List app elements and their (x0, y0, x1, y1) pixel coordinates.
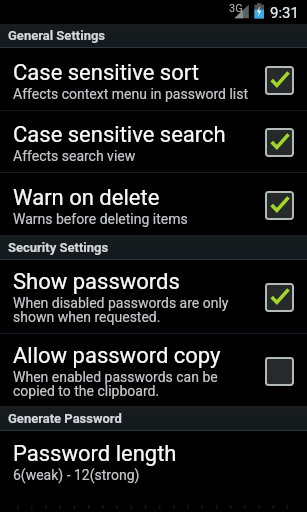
staticText: 9:31 (270, 4, 299, 22)
staticText: Affects search view (13, 150, 136, 164)
button[interactable]: Show passwords (0, 260, 307, 333)
staticText: Generate Password (8, 411, 122, 426)
staticText: Affects context menu in password list (13, 88, 249, 102)
staticText: Case sensitive sort (13, 59, 199, 86)
staticText: Case sensitive search (13, 121, 226, 148)
button[interactable]: Warn on delete (0, 173, 307, 235)
other: Checked (265, 66, 294, 95)
staticText: 6(weak) - 12(strong) (13, 469, 140, 483)
staticText: 3G (229, 2, 243, 15)
staticText: When enabled passwords can be copied to … (13, 371, 218, 399)
staticText: General Settings (8, 28, 106, 43)
other: Checked (265, 191, 294, 220)
staticText: Allow password copy (13, 342, 221, 369)
button[interactable]: Case sensitive sort (0, 48, 307, 110)
other: Checked (265, 128, 294, 157)
staticText: When disabled passwords are only shown w… (13, 297, 229, 325)
staticText: Warn on delete (13, 184, 160, 211)
staticText: Password length (13, 440, 177, 467)
button[interactable]: Case sensitive search (0, 111, 307, 172)
button[interactable]: Allow password copy (0, 334, 307, 406)
other: Unchecked (265, 357, 294, 386)
button[interactable]: Password length (0, 431, 307, 512)
staticText: Show passwords (13, 268, 180, 295)
staticText: Security Settings (8, 240, 109, 255)
staticText: Warns before deleting items (13, 213, 188, 227)
other: Checked (265, 283, 294, 312)
